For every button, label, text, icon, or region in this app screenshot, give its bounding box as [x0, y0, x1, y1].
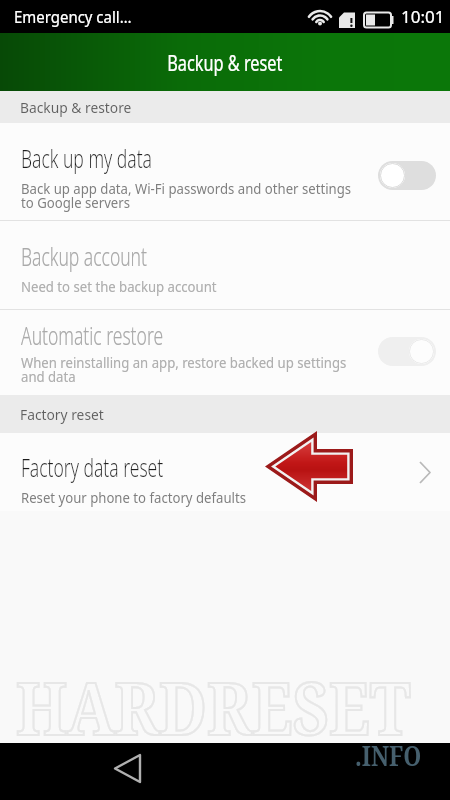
- button[interactable]: Back up my data: [0, 123, 450, 220]
- staticText: Back up my data: [21, 141, 153, 175]
- button[interactable]: Factory data reset: [0, 433, 450, 511]
- staticText: Back up app data, Wi-Fi passwords and ot…: [21, 179, 352, 212]
- button[interactable]: [378, 337, 436, 366]
- staticText: Automatic restore: [21, 318, 164, 352]
- button[interactable]: Backup account: [0, 221, 450, 309]
- staticText: Reset your phone to factory defaults: [21, 488, 247, 507]
- staticText: Emergency call…: [14, 5, 132, 28]
- staticText: Backup account: [21, 239, 147, 273]
- staticText: Need to set the backup account: [21, 277, 217, 296]
- button[interactable]: [0, 743, 450, 800]
- staticText: When reinstalling an app, restore backed…: [21, 353, 347, 386]
- button[interactable]: Automatic restore: [0, 310, 450, 395]
- staticText: 10:01: [401, 5, 445, 28]
- staticText: Backup & reset: [167, 47, 283, 77]
- staticText: .INFO: [355, 737, 422, 774]
- staticText: Factory reset: [20, 404, 105, 424]
- staticText: Backup & restore: [20, 97, 132, 117]
- button[interactable]: [378, 161, 436, 190]
- staticText: Factory data reset: [21, 450, 164, 484]
- staticText: HARDRESET: [16, 658, 411, 756]
